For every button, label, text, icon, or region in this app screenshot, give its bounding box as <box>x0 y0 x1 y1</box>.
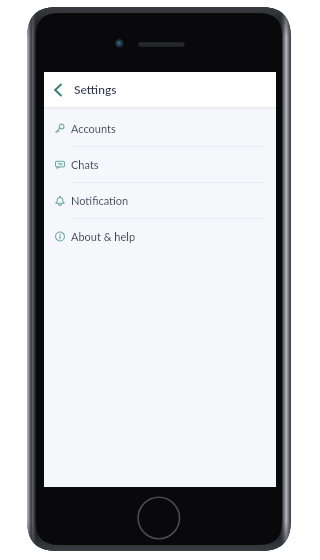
button[interactable]: Notification <box>44 183 276 219</box>
button[interactable]: Accounts <box>44 111 276 147</box>
staticText: Chats <box>71 158 99 171</box>
staticText: Settings <box>74 82 117 96</box>
button[interactable]: Chats <box>44 147 276 183</box>
staticText: Notification <box>71 194 129 207</box>
button[interactable]: Back <box>44 72 72 107</box>
staticText: Accounts <box>71 122 116 135</box>
button[interactable]: About & help <box>44 219 276 255</box>
staticText: About & help <box>71 230 136 243</box>
